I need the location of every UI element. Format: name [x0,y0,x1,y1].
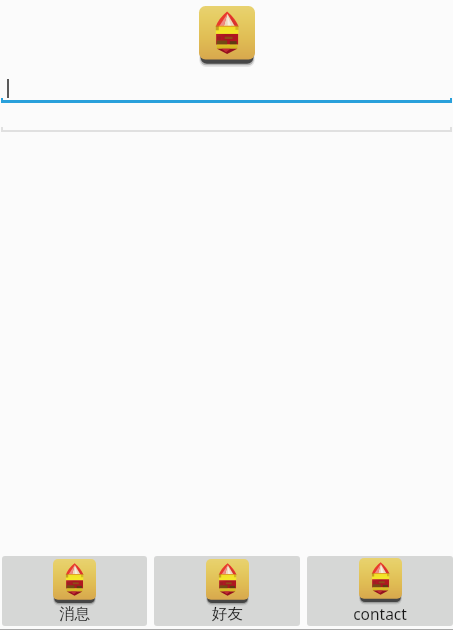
button[interactable]: 好友 [154,556,300,626]
button[interactable]: 消息 [2,556,147,626]
staticText: contact [353,603,407,624]
button[interactable]: contact [307,556,453,626]
button[interactable]: Username field [0,68,453,103]
button[interactable]: App icon [199,6,255,65]
button[interactable]: Password field [0,103,453,132]
staticText: 消息 [59,604,90,624]
staticText: 好友 [212,604,243,624]
